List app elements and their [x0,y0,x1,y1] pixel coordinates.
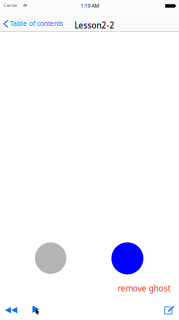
staticText: 1:19 AM [80,2,99,9]
staticText: remove ghost [118,283,171,294]
button[interactable]: Ghost [35,242,66,274]
button[interactable]: Ball [111,242,143,274]
button[interactable]: Select [23,301,48,320]
button[interactable]: remove ghost [118,283,171,294]
staticText: Table of contents [10,19,63,28]
button[interactable]: Table of contents [0,15,65,32]
button[interactable]: Compose [158,302,179,320]
staticText: Lesson2-2 [74,20,114,31]
button[interactable]: Rewind [0,302,23,319]
staticText: Carrier [3,3,17,8]
